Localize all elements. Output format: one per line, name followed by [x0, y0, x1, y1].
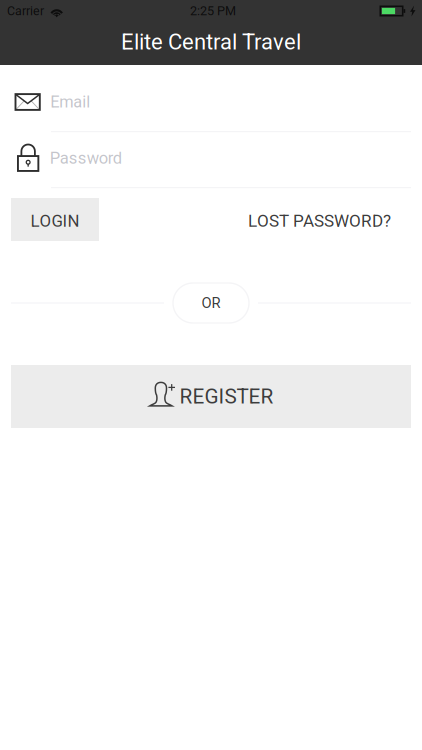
button[interactable]: REGISTER	[11, 365, 411, 428]
staticText: LOGIN	[30, 211, 79, 231]
button[interactable]: LOST PASSWORD?	[248, 198, 391, 241]
button[interactable]: LOGIN	[11, 198, 99, 241]
staticText: Carrier	[7, 4, 44, 18]
staticText: Password	[50, 148, 122, 168]
button[interactable]: Email	[0, 83, 422, 121]
staticText: OR	[201, 294, 220, 312]
button[interactable]: Password	[0, 139, 422, 177]
staticText: Elite Central Travel	[121, 29, 301, 55]
staticText: LOST PASSWORD?	[248, 211, 391, 231]
staticText: 2:25 PM	[190, 4, 236, 18]
staticText: REGISTER	[179, 384, 273, 409]
staticText: Email	[50, 92, 90, 112]
